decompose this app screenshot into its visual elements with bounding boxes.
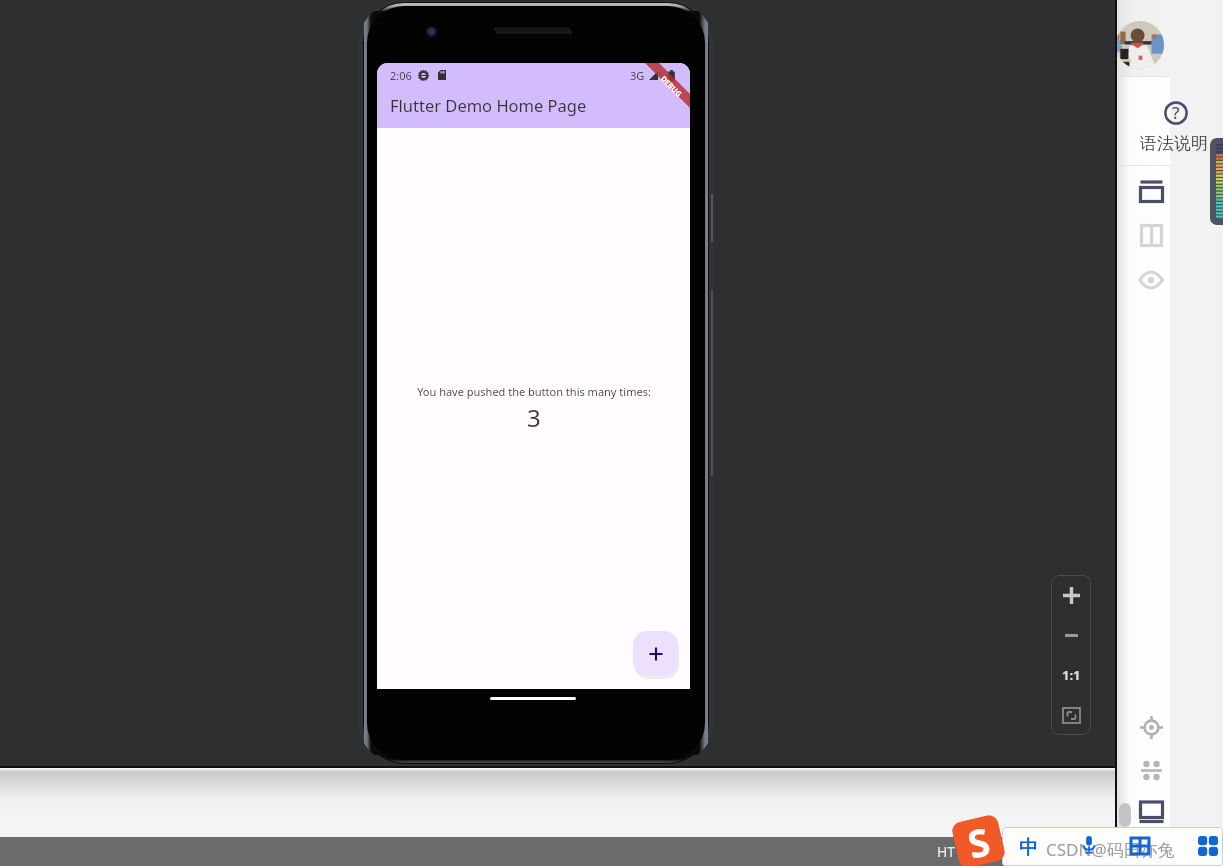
staticText: Flutter Demo Home Page bbox=[390, 94, 587, 116]
staticText: 2:06 bbox=[390, 68, 412, 83]
button[interactable]: Profile bbox=[1116, 21, 1164, 69]
button[interactable]: ? bbox=[1117, 82, 1223, 160]
staticText: You have pushed the button this many tim… bbox=[417, 384, 651, 399]
button[interactable]: Zoom out bbox=[1051, 615, 1091, 655]
staticText: 语法说明 bbox=[1140, 133, 1208, 154]
button[interactable]: Split view bbox=[1136, 220, 1166, 250]
staticText: ? bbox=[1172, 101, 1180, 124]
staticText: HT bbox=[937, 842, 956, 861]
button[interactable]: Fit to window bbox=[1051, 695, 1091, 735]
button[interactable]: Increment bbox=[633, 631, 678, 676]
staticText: 3G bbox=[630, 68, 645, 83]
staticText: DEBUG bbox=[659, 73, 684, 99]
button[interactable]: Zoom in bbox=[1051, 575, 1091, 615]
staticText: ! bbox=[659, 69, 662, 81]
button[interactable]: Distribute bbox=[1136, 755, 1166, 785]
button[interactable]: Device bbox=[1136, 797, 1166, 827]
button[interactable]: Preview bbox=[1136, 265, 1166, 295]
button[interactable]: Center bbox=[1136, 712, 1166, 742]
staticText: 1:1 bbox=[1062, 666, 1081, 684]
staticText: 中 bbox=[1019, 836, 1038, 860]
button[interactable]: 1:1 bbox=[1051, 655, 1091, 695]
staticText: S bbox=[963, 816, 994, 865]
button[interactable]: Layout bbox=[1136, 177, 1166, 207]
staticText: CSDN@码田亦兔 bbox=[1046, 838, 1175, 861]
staticText: 3 bbox=[527, 401, 541, 434]
